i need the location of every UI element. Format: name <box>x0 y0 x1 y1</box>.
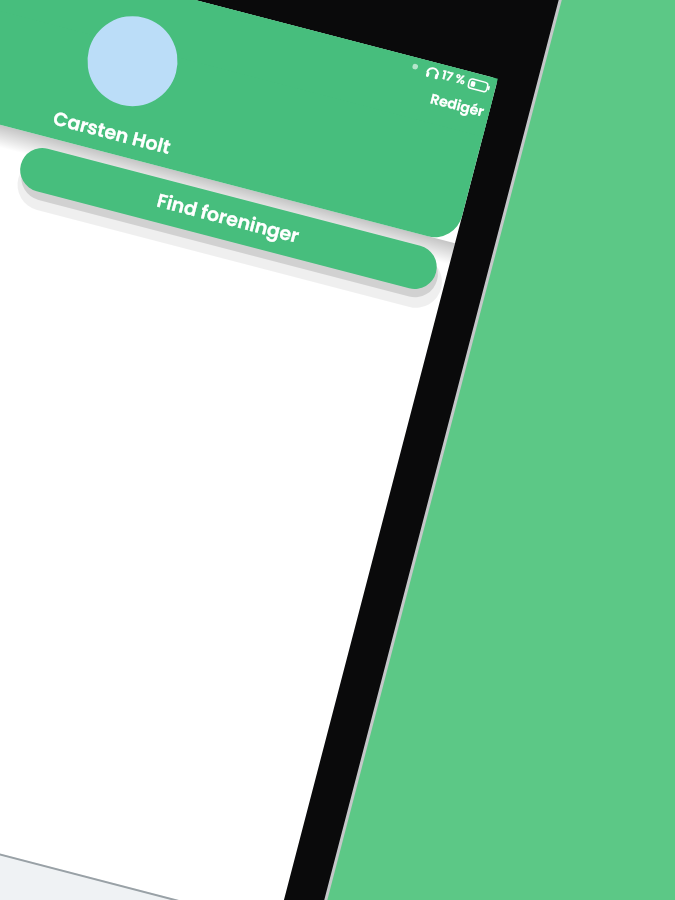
button[interactable] <box>0 845 200 900</box>
button[interactable] <box>87 15 177 105</box>
button[interactable] <box>428 86 490 118</box>
button[interactable] <box>60 160 420 260</box>
